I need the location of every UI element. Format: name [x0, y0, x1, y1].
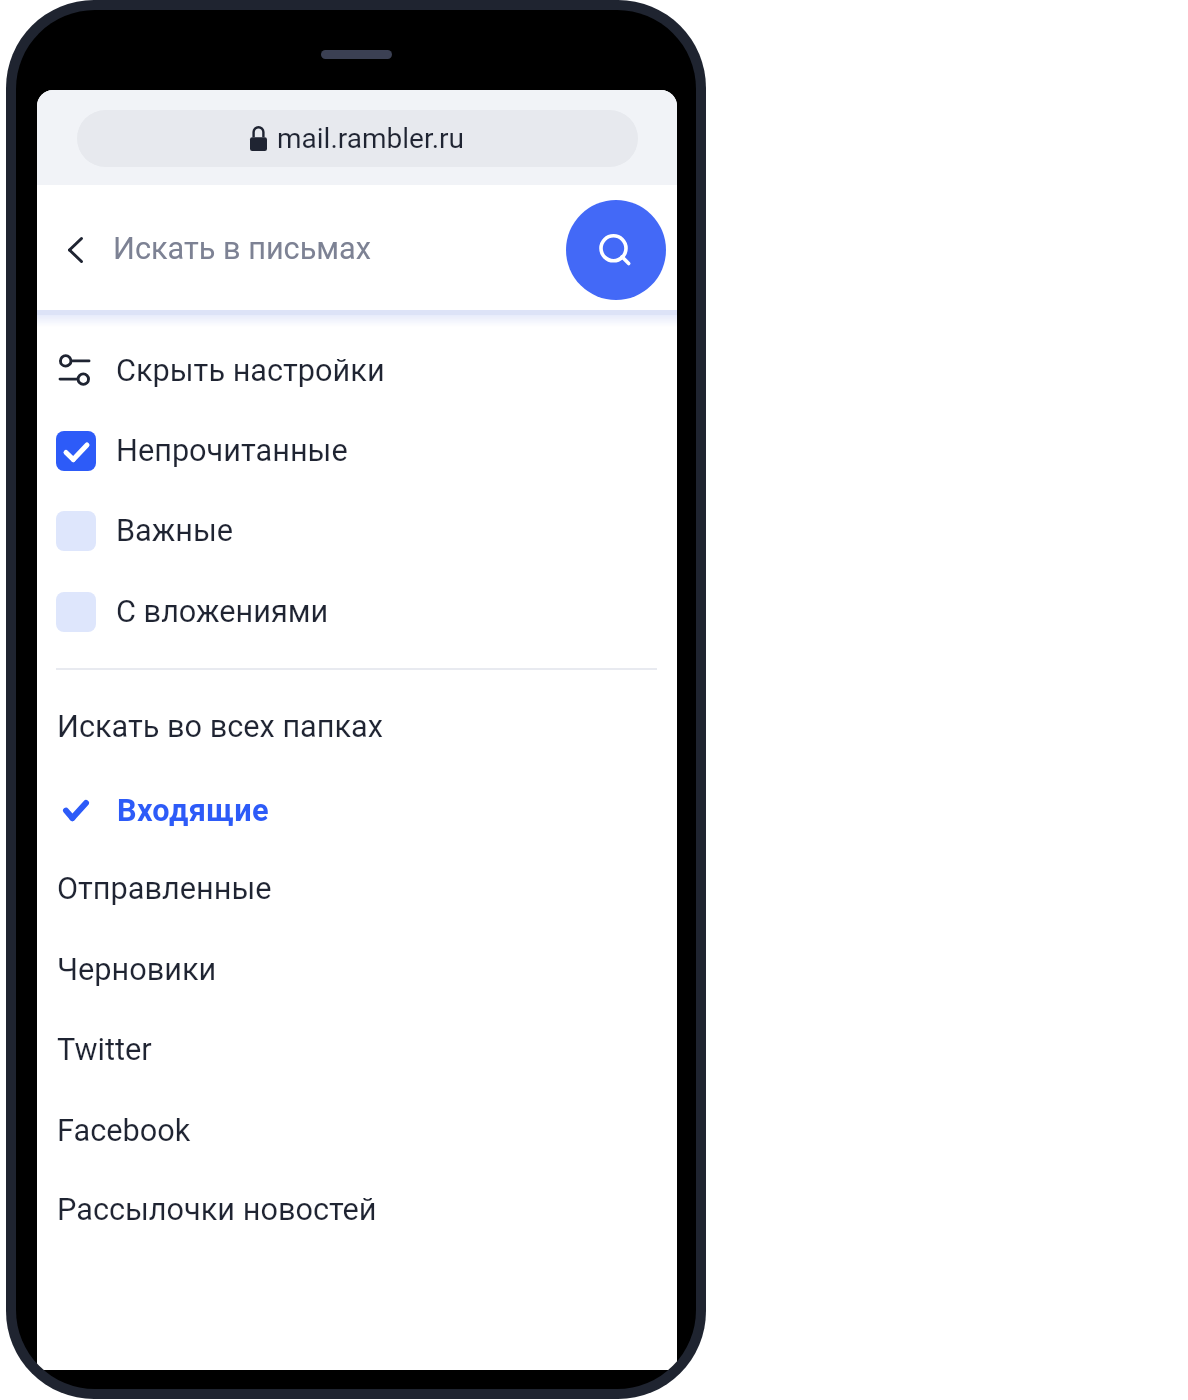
staticText: Twitter [57, 1032, 152, 1068]
button[interactable]: Twitter [37, 1010, 677, 1090]
staticText: Отправленные [57, 871, 272, 907]
staticText: Искать в письмах [113, 231, 372, 267]
staticText: Черновики [57, 952, 217, 988]
button[interactable]: Искать во всех папках [37, 687, 677, 767]
button[interactable]: Входящие [37, 771, 677, 851]
button[interactable]: Back [51, 226, 99, 274]
button[interactable]: Отправленные [37, 849, 677, 929]
staticText: С вложениями [116, 594, 329, 630]
button[interactable]: Скрыть настройки [37, 331, 677, 411]
button[interactable]: mail.rambler.ru [77, 110, 638, 167]
staticText: Скрыть настройки [116, 353, 385, 389]
staticText: Важные [116, 513, 234, 549]
button[interactable]: Важные [37, 491, 677, 571]
staticText: Искать во всех папках [57, 709, 384, 745]
button[interactable]: Facebook [37, 1091, 677, 1171]
staticText: mail.rambler.ru [277, 122, 465, 155]
staticText: Рассылочки новостей [57, 1192, 377, 1228]
button[interactable]: Черновики [37, 930, 677, 1010]
button[interactable]: Рассылочки новостей [37, 1170, 677, 1250]
staticText: Входящие [117, 793, 269, 829]
staticText: Непрочитанные [116, 433, 348, 469]
button[interactable]: Искать в письмах [113, 209, 553, 289]
button[interactable]: С вложениями [37, 572, 677, 652]
button[interactable]: Непрочитанные [37, 411, 677, 491]
button[interactable]: Search [566, 200, 666, 300]
staticText: Facebook [57, 1113, 191, 1149]
